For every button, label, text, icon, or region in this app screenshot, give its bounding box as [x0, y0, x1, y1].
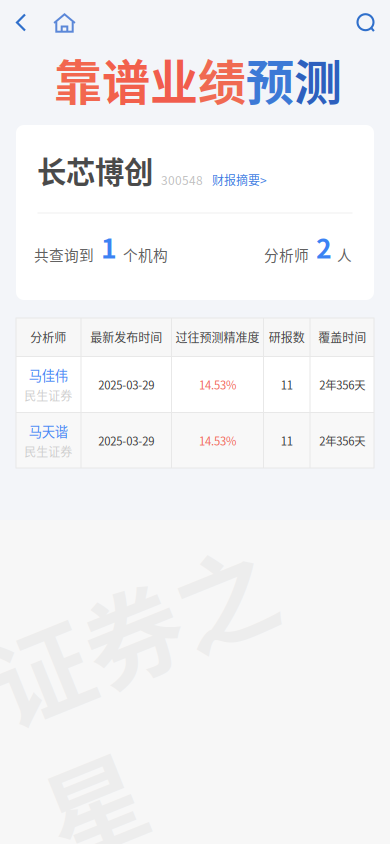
button[interactable]: 财报摘要>: [212, 171, 267, 191]
button[interactable]: Search: [344, 0, 388, 46]
staticText: 民生证券: [24, 386, 72, 404]
staticText: 分析师: [264, 244, 309, 265]
staticText: 11: [281, 432, 293, 449]
button[interactable]: Home: [40, 0, 84, 46]
button[interactable]: Back: [3, 0, 40, 46]
staticText: 2年356天: [319, 432, 365, 449]
staticText: 分析师: [30, 328, 66, 346]
staticText: 靠: [54, 44, 102, 114]
staticText: 业: [150, 44, 198, 114]
staticText: 证券之星: [10, 555, 307, 841]
staticText: 2: [316, 227, 332, 266]
staticText: 谱: [102, 44, 150, 114]
staticText: 过往预测精准度: [175, 328, 259, 346]
staticText: 人: [337, 244, 352, 265]
staticText: 2年356天: [319, 376, 365, 393]
staticText: 测: [294, 44, 342, 114]
staticText: 绩: [198, 44, 246, 114]
staticText: 长芯博创: [37, 149, 153, 191]
staticText: 14.53%: [199, 432, 236, 449]
staticText: 11: [281, 376, 293, 393]
staticText: 民生证券: [24, 442, 72, 460]
staticText: 共查询到: [34, 244, 94, 265]
staticText: 马佳伟: [29, 365, 68, 384]
staticText: 14.53%: [199, 376, 236, 393]
staticText: 1: [101, 227, 117, 266]
staticText: 300548: [161, 171, 203, 188]
staticText: 最新发布时间: [90, 328, 162, 346]
staticText: 2025-03-29: [98, 376, 154, 393]
staticText: 预: [246, 44, 294, 114]
staticText: 2025-03-29: [98, 432, 154, 449]
staticText: 财报摘要>: [212, 171, 267, 188]
staticText: 研报数: [269, 328, 305, 346]
staticText: 个机构: [123, 244, 168, 265]
staticText: 覆盖时间: [318, 328, 366, 346]
staticText: 马天谐: [29, 421, 68, 440]
